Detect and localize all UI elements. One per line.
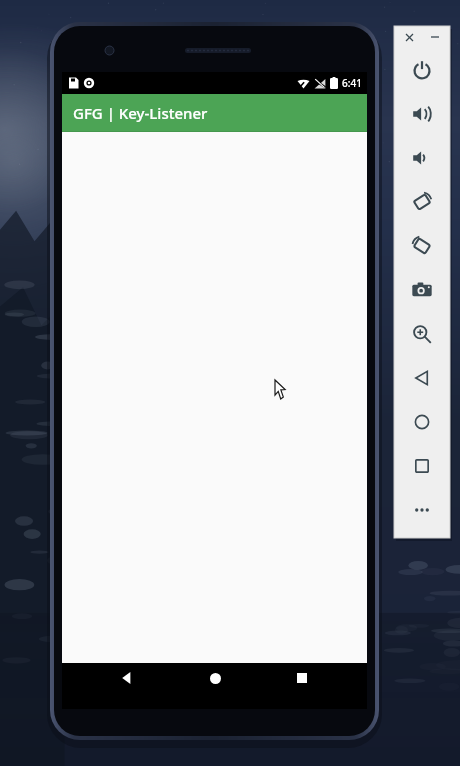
button[interactable]: Home [192, 663, 238, 693]
button[interactable]: Minimize [425, 27, 445, 47]
staticText: 6:41 [342, 76, 362, 90]
button[interactable]: Power [394, 48, 450, 92]
button[interactable]: Rotate left [394, 180, 450, 224]
button[interactable]: GFG | Key-Listener [62, 94, 367, 132]
button[interactable]: Back [104, 663, 150, 693]
button[interactable]: Recent apps [279, 663, 325, 693]
button[interactable]: Volume up [394, 92, 450, 136]
button[interactable]: Back [394, 356, 450, 400]
button[interactable]: Take screenshot [394, 268, 450, 312]
button[interactable]: Zoom [394, 312, 450, 356]
button[interactable]: Home [394, 400, 450, 444]
button[interactable]: Overview [394, 444, 450, 488]
button[interactable]: Volume down [394, 136, 450, 180]
button[interactable]: Close [399, 27, 419, 47]
button[interactable]: Rotate right [394, 224, 450, 268]
button[interactable]: More [394, 488, 450, 532]
staticText: GFG | Key-Listener [73, 103, 208, 123]
